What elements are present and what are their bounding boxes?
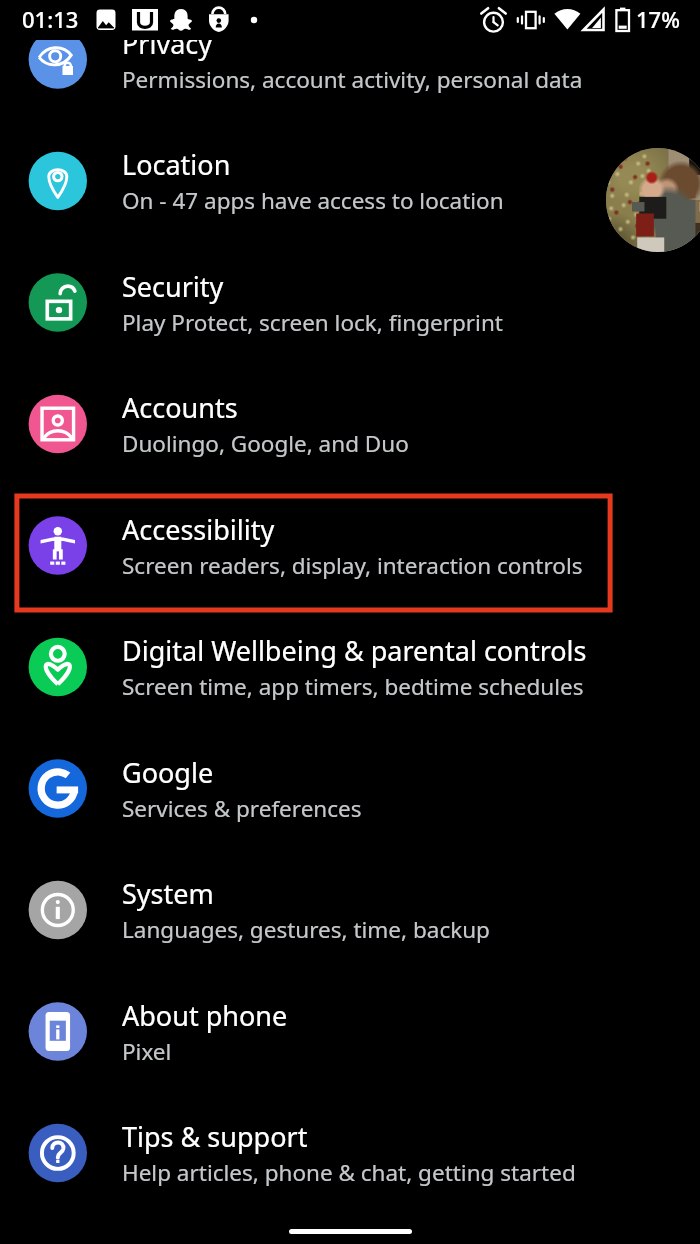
- staticText: Security: [122, 268, 224, 305]
- button[interactable]: System: [0, 855, 700, 965]
- staticText: Languages, gestures, time, backup: [122, 914, 490, 945]
- staticText: Screen readers, display, interaction con…: [122, 550, 583, 581]
- staticText: Accounts: [122, 389, 238, 426]
- staticText: Location: [122, 146, 231, 183]
- staticText: About phone: [122, 997, 288, 1034]
- button[interactable]: Accessibility: [0, 491, 700, 601]
- staticText: Help articles, phone & chat, getting sta…: [122, 1157, 576, 1188]
- button[interactable]: Accounts: [0, 369, 700, 479]
- button[interactable]: Privacy: [0, 5, 700, 115]
- staticText: Google: [122, 754, 214, 791]
- staticText: Duolingo, Google, and Duo: [122, 428, 409, 459]
- staticText: Tips & support: [122, 1118, 308, 1155]
- button[interactable]: Security: [0, 248, 700, 358]
- staticText: 17%: [636, 4, 680, 34]
- staticText: System: [122, 875, 214, 912]
- staticText: Screen time, app timers, bedtime schedul…: [122, 671, 584, 702]
- staticText: Privacy: [122, 25, 213, 62]
- staticText: Services & preferences: [122, 793, 362, 824]
- button[interactable]: About phone: [0, 977, 700, 1087]
- staticText: On - 47 apps have access to location: [122, 185, 504, 216]
- staticText: Play Protect, screen lock, fingerprint: [122, 307, 503, 338]
- staticText: Pixel: [122, 1036, 172, 1067]
- staticText: Permissions, account activity, personal …: [122, 64, 583, 95]
- button[interactable]: Tips & support: [0, 1098, 700, 1208]
- staticText: Accessibility: [122, 511, 275, 548]
- button[interactable]: Location: [0, 126, 700, 236]
- staticText: 01:13: [22, 4, 79, 34]
- button[interactable]: Account profile photo: [606, 148, 700, 252]
- button[interactable]: Google: [0, 734, 700, 844]
- button[interactable]: Digital Wellbeing & parental controls: [0, 612, 700, 722]
- staticText: Digital Wellbeing & parental controls: [122, 632, 587, 669]
